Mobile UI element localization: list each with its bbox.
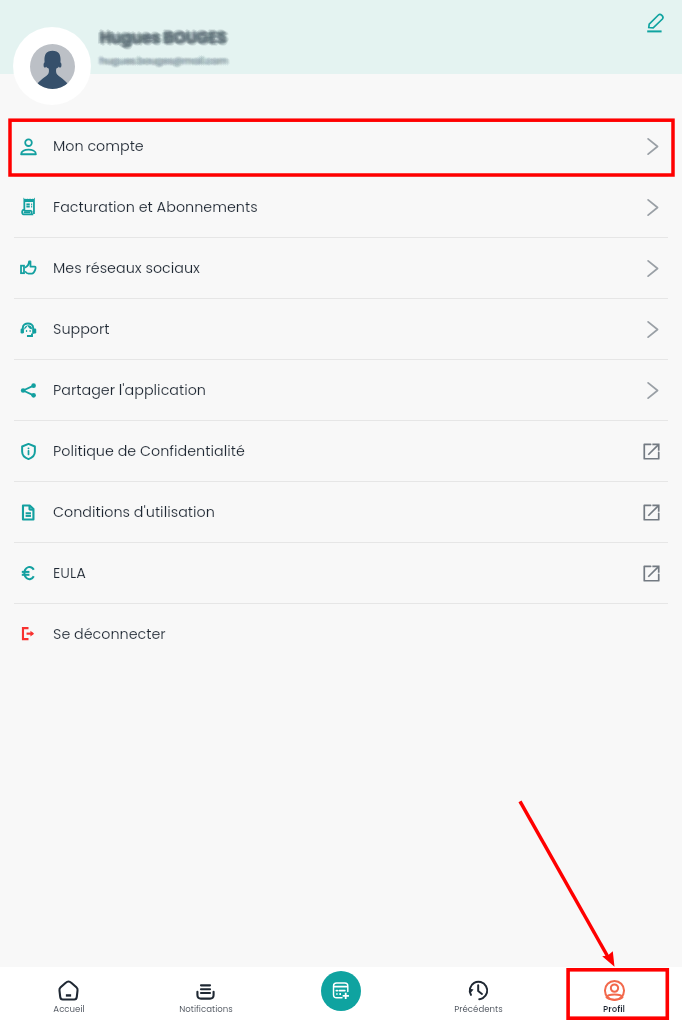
staticText: Hugues BOUGES (100, 26, 227, 48)
staticText: Se déconnecter (53, 624, 166, 644)
staticText: hugues.bouges@mail.com (101, 52, 229, 65)
staticText: Hugues BOUGES (101, 28, 228, 50)
staticText: hugues.bouges@mail.com (99, 54, 227, 67)
staticText: Partager l'application (53, 380, 207, 400)
staticText: Hugues BOUGES (97, 28, 224, 50)
staticText: hugues.bouges@mail.com (101, 53, 229, 66)
staticText: hugues.bouges@mail.com (99, 53, 227, 66)
button[interactable]: Politique de Confidentialité (0, 421, 682, 481)
staticText: hugues.bouges@mail.com (99, 52, 227, 65)
staticText: Hugues BOUGES (103, 26, 230, 48)
staticText: Hugues BOUGES (99, 28, 226, 50)
staticText: Hugues BOUGES (99, 24, 226, 46)
staticText: Hugues BOUGES (101, 25, 228, 47)
button[interactable]: Photo de profil (13, 27, 91, 105)
staticText: Hugues BOUGES (99, 26, 226, 48)
staticText: hugues.bouges@mail.com (102, 55, 230, 68)
staticText: hugues.bouges@mail.com (100, 55, 228, 68)
staticText: Politique de Confidentialité (53, 441, 245, 461)
button[interactable]: Support (0, 299, 682, 359)
staticText: Hugues BOUGES (101, 30, 228, 52)
staticText: Hugues BOUGES (100, 28, 227, 50)
staticText: hugues.bouges@mail.com (102, 54, 230, 67)
staticText: hugues.bouges@mail.com (100, 53, 228, 66)
button[interactable]: Notifications (137, 967, 274, 1024)
staticText: hugues.bouges@mail.com (98, 55, 226, 68)
staticText: Hugues BOUGES (100, 25, 227, 47)
staticText: hugues.bouges@mail.com (100, 54, 228, 67)
staticText: Mes réseaux sociaux (53, 258, 200, 278)
button[interactable]: Partager l'application (0, 360, 682, 420)
staticText: hugues.bouges@mail.com (103, 54, 231, 67)
staticText: hugues.bouges@mail.com (101, 54, 229, 67)
staticText: hugues.bouges@mail.com (99, 56, 227, 69)
button[interactable]: Se déconnecter (0, 604, 682, 664)
button[interactable]: Nouvelle carte (321, 971, 361, 1011)
staticText: Support (53, 319, 110, 339)
staticText: hugues.bouges@mail.com (100, 53, 228, 66)
staticText: hugues.bouges@mail.com (98, 54, 226, 67)
staticText: Hugues BOUGES (102, 29, 229, 51)
staticText: hugues.bouges@mail.com (101, 56, 229, 69)
staticText: hugues.bouges@mail.com (97, 54, 225, 67)
staticText: Hugues BOUGES (97, 27, 224, 49)
staticText: Hugues BOUGES (100, 29, 227, 51)
staticText: hugues.bouges@mail.com (101, 55, 229, 68)
staticText: Accueil (53, 1003, 85, 1015)
button[interactable]: Mon compte (0, 116, 682, 176)
button[interactable]: Accueil (0, 967, 137, 1024)
staticText: Hugues BOUGES (101, 27, 228, 49)
staticText: Hugues BOUGES (101, 27, 228, 49)
staticText: Hugues BOUGES (101, 26, 228, 48)
button[interactable]: Profil (546, 967, 682, 1024)
staticText: Notifications (179, 1003, 233, 1015)
staticText: Hugues BOUGES (99, 27, 226, 49)
staticText: hugues.bouges@mail.com (98, 53, 226, 66)
staticText: Hugues BOUGES (100, 27, 227, 49)
staticText: Hugues BOUGES (98, 27, 225, 49)
button[interactable]: Facturation et Abonnements (0, 177, 682, 237)
staticText: hugues.bouges@mail.com (101, 54, 229, 67)
staticText: Hugues BOUGES (99, 27, 226, 49)
staticText: Précédents (454, 1003, 503, 1015)
button[interactable]: Modifier le profil (640, 7, 672, 39)
staticText: Hugues BOUGES (103, 27, 230, 49)
staticText: hugues.bouges@mail.com (100, 55, 228, 68)
button[interactable]: Conditions d'utilisation (0, 482, 682, 542)
staticText: EULA (53, 563, 86, 583)
staticText: Facturation et Abonnements (53, 197, 258, 217)
button[interactable]: Précédents (410, 967, 546, 1024)
staticText: Mon compte (53, 136, 144, 156)
staticText: Conditions d'utilisation (53, 502, 215, 522)
staticText: Hugues BOUGES (99, 29, 226, 51)
staticText: hugues.bouges@mail.com (102, 53, 230, 66)
staticText: hugues.bouges@mail.com (99, 55, 227, 68)
staticText: Profil (603, 1003, 625, 1015)
staticText: Hugues BOUGES (98, 25, 225, 47)
staticText: hugues.bouges@mail.com (99, 54, 227, 67)
button[interactable]: EULA (0, 543, 682, 603)
staticText: Hugues BOUGES (102, 27, 229, 49)
button[interactable]: Mes réseaux sociaux (0, 238, 682, 298)
